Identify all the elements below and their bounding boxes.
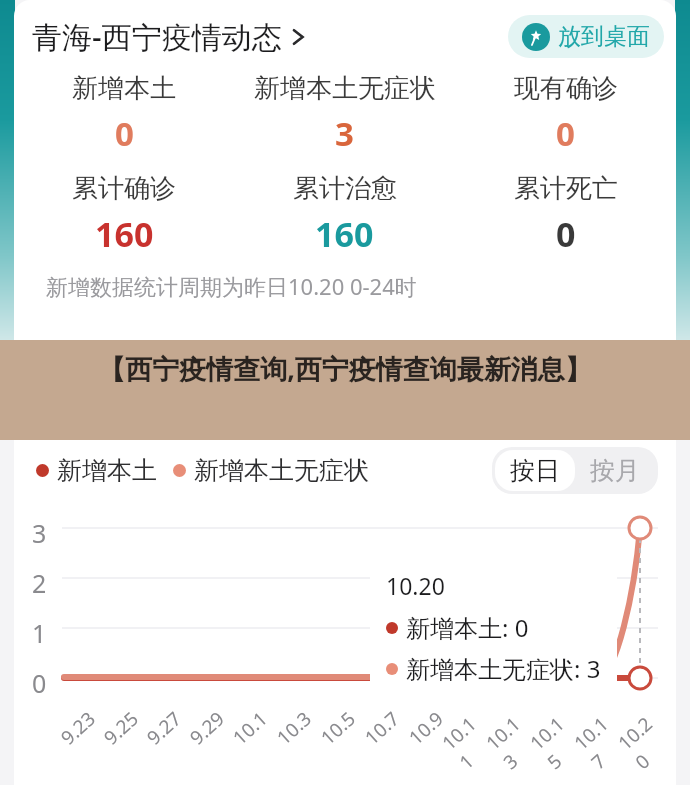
button[interactable]: 青海-西宁疫情动态 — [32, 16, 308, 57]
staticText: 10.3 — [271, 706, 317, 750]
staticText: 10.5 — [315, 706, 361, 750]
staticText: 累计死亡 — [514, 172, 618, 205]
staticText: 放到桌面 — [558, 22, 650, 51]
staticText: 1 — [32, 616, 47, 650]
staticText: 0 — [556, 211, 576, 257]
staticText: 9.25 — [98, 706, 144, 750]
button[interactable]: 累计确诊 — [14, 172, 234, 257]
staticText: 累计确诊 — [72, 172, 176, 205]
button[interactable]: 累计死亡 — [455, 172, 676, 257]
staticText: 3 — [335, 111, 354, 156]
staticText: 新增本土无症状 — [254, 72, 436, 105]
staticText: 现有确诊 — [514, 72, 618, 105]
staticText: 新增本土无症状: 3 — [406, 652, 601, 685]
staticText: 新增本土无症状 — [194, 455, 369, 486]
staticText: 新增数据统计周期为昨日10.20 0-24时 — [46, 271, 417, 301]
button[interactable]: 新增本土 — [14, 72, 234, 156]
staticText: 累计治愈 — [293, 172, 397, 205]
staticText: 按日 — [510, 455, 560, 486]
staticText: 【西宁疫情查询,西宁疫情查询最新消息】 — [18, 350, 672, 387]
staticText: 0 — [556, 111, 575, 156]
button[interactable]: 按月 — [575, 450, 655, 491]
staticText: 9.23 — [55, 706, 101, 750]
staticText: 10.13 — [480, 707, 548, 775]
staticText: 2 — [32, 566, 47, 600]
staticText: 9.29 — [184, 706, 230, 750]
staticText: 3 — [32, 516, 47, 550]
button[interactable]: 新增本土无症状 — [234, 72, 455, 156]
staticText: 10.17 — [568, 707, 636, 775]
staticText: 10.7 — [359, 706, 405, 750]
staticText: 160 — [95, 211, 154, 257]
staticText: 9.27 — [141, 706, 187, 750]
staticText: 新增本土: 0 — [406, 611, 529, 644]
button[interactable]: 放到桌面 — [508, 15, 664, 58]
button[interactable]: 按日 — [495, 450, 575, 491]
staticText: 160 — [315, 211, 374, 257]
staticText: 10.20 — [386, 570, 445, 601]
staticText: 10.9 — [403, 706, 449, 750]
staticText: 新增本土 — [72, 72, 176, 105]
staticText: 10.11 — [436, 707, 504, 775]
staticText: 10.20 — [612, 707, 680, 775]
button[interactable]: 现有确诊 — [455, 72, 676, 156]
staticText: 青海-西宁疫情动态 — [32, 16, 282, 57]
staticText: 按月 — [590, 455, 640, 486]
staticText: 0 — [115, 111, 134, 156]
staticText: 10.1 — [227, 706, 273, 750]
staticText: 新增本土 — [57, 455, 157, 486]
button[interactable]: 累计治愈 — [234, 172, 455, 257]
staticText: 0 — [32, 666, 47, 700]
staticText: 10.15 — [524, 707, 592, 775]
